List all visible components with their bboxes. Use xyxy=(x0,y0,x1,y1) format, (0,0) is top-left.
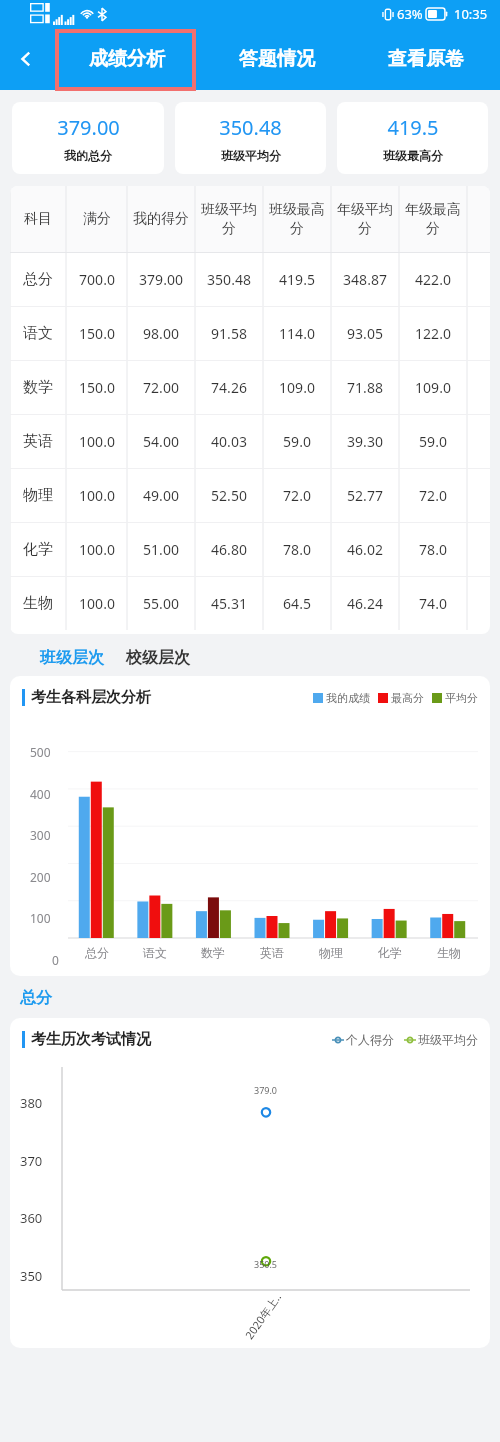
staticText: 化学 xyxy=(23,540,53,559)
staticText: 419.5 xyxy=(387,114,439,141)
staticText: 班级平均分 xyxy=(418,1032,478,1047)
button[interactable]: 校级层次 xyxy=(126,648,190,668)
staticText: 考生各科层次分析 xyxy=(31,688,151,707)
staticText: 科目 xyxy=(24,210,52,228)
staticText: 350.48 xyxy=(219,114,282,141)
staticText: 数学 xyxy=(201,945,225,960)
staticText: 93.05 xyxy=(347,324,383,343)
staticText: 54.00 xyxy=(143,432,179,451)
staticText: 52.50 xyxy=(211,486,247,505)
staticText: 我的得分 xyxy=(133,210,189,228)
staticText: 数学 xyxy=(23,378,53,397)
staticText: 300 xyxy=(30,827,51,843)
staticText: 400 xyxy=(30,786,51,802)
staticText: 350.5 xyxy=(254,1258,278,1270)
staticText: 379.00 xyxy=(139,270,183,289)
staticText: 55.00 xyxy=(143,594,179,613)
staticText: 71.88 xyxy=(347,378,383,397)
staticText: 45.31 xyxy=(211,594,247,613)
staticText: 422.0 xyxy=(415,270,451,289)
staticText: 0 xyxy=(52,952,59,968)
button[interactable]: 419.5 xyxy=(337,102,488,174)
staticText: 150.0 xyxy=(79,324,115,343)
staticText: 109.0 xyxy=(415,378,451,397)
staticText: 年级平均分 xyxy=(333,201,397,237)
staticText: 74.26 xyxy=(211,378,247,397)
staticText: 班级平均分 xyxy=(221,148,281,163)
staticText: 98.00 xyxy=(143,324,179,343)
staticText: 总分 xyxy=(85,945,109,960)
staticText: 物理 xyxy=(319,945,343,960)
staticText: 348.87 xyxy=(343,270,387,289)
staticText: 350.48 xyxy=(207,270,251,289)
staticText: 语文 xyxy=(23,324,53,343)
staticText: 200 xyxy=(30,869,51,885)
staticText: 700.0 xyxy=(79,270,115,289)
staticText: 班级最高分 xyxy=(383,148,443,163)
staticText: 122.0 xyxy=(415,324,451,343)
staticText: 100.0 xyxy=(79,432,115,451)
button[interactable]: 成绩分析 xyxy=(52,28,202,90)
staticText: 总分 xyxy=(20,988,52,1008)
staticText: 78.0 xyxy=(419,540,447,559)
staticText: 72.0 xyxy=(419,486,447,505)
staticText: 100.0 xyxy=(79,594,115,613)
staticText: 校级层次 xyxy=(126,648,190,668)
staticText: 我的总分 xyxy=(64,148,112,163)
staticText: 39.30 xyxy=(347,432,383,451)
staticText: 物理 xyxy=(23,486,53,505)
staticText: 满分 xyxy=(83,210,111,228)
staticText: 59.0 xyxy=(283,432,311,451)
button[interactable]: 379.00 xyxy=(12,102,164,174)
staticText: 46.02 xyxy=(347,540,383,559)
staticText: 500 xyxy=(30,744,51,760)
staticText: 答题情况 xyxy=(239,47,315,71)
staticText: 49.00 xyxy=(143,486,179,505)
staticText: 100 xyxy=(30,910,51,926)
button[interactable]: 查看原卷 xyxy=(351,28,500,90)
staticText: 72.0 xyxy=(283,486,311,505)
staticText: 109.0 xyxy=(279,378,315,397)
staticText: 78.0 xyxy=(283,540,311,559)
staticText: 40.03 xyxy=(211,432,247,451)
staticText: 74.0 xyxy=(419,594,447,613)
staticText: 生物 xyxy=(437,945,461,960)
staticText: 班级平均分 xyxy=(197,201,261,237)
staticText: 91.58 xyxy=(211,324,247,343)
staticText: 59.0 xyxy=(419,432,447,451)
staticText: 379.00 xyxy=(57,114,120,141)
staticText: 班级最高分 xyxy=(265,201,329,237)
staticText: 350 xyxy=(20,1267,43,1285)
staticText: 52.77 xyxy=(347,486,383,505)
button[interactable]: Back xyxy=(0,28,52,90)
staticText: 63% xyxy=(397,5,423,23)
staticText: 72.00 xyxy=(143,378,179,397)
staticText: 150.0 xyxy=(79,378,115,397)
staticText: 总分 xyxy=(23,270,53,289)
staticText: 考生历次考试情况 xyxy=(31,1030,151,1049)
staticText: 379.0 xyxy=(254,1084,278,1096)
staticText: 查看原卷 xyxy=(388,47,464,71)
staticText: 生物 xyxy=(23,594,53,613)
staticText: 2020年上.. xyxy=(241,1289,285,1342)
button[interactable]: 班级层次 xyxy=(40,648,104,668)
staticText: 语文 xyxy=(143,945,167,960)
staticText: 英语 xyxy=(23,432,53,451)
staticText: 10:35 xyxy=(454,5,488,23)
staticText: 419.5 xyxy=(279,270,315,289)
staticText: 51.00 xyxy=(143,540,179,559)
staticText: 100.0 xyxy=(79,486,115,505)
staticText: 114.0 xyxy=(279,324,315,343)
button[interactable]: 答题情况 xyxy=(202,28,351,90)
staticText: 化学 xyxy=(378,945,402,960)
staticText: 370 xyxy=(20,1152,43,1170)
staticText: 我的成绩 xyxy=(326,691,370,705)
staticText: 100.0 xyxy=(79,540,115,559)
staticText: 年级最高分 xyxy=(401,201,465,237)
button[interactable]: 350.48 xyxy=(175,102,326,174)
staticText: 46.24 xyxy=(347,594,383,613)
staticText: 380 xyxy=(20,1094,43,1112)
staticText: 64.5 xyxy=(283,594,311,613)
staticText: 个人得分 xyxy=(346,1032,394,1047)
staticText: 成绩分析 xyxy=(89,47,165,71)
